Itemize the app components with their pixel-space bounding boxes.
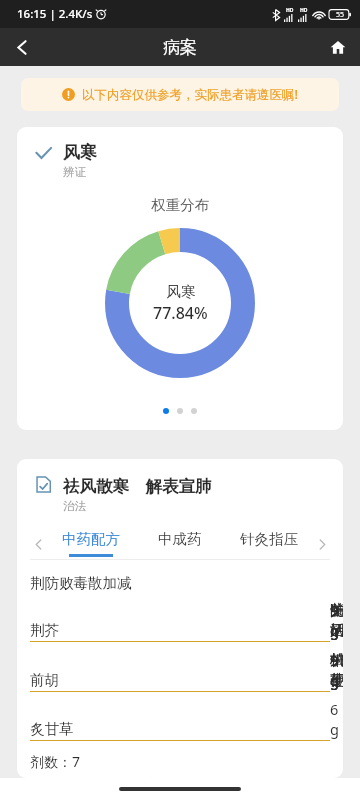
staticText: 风寒 [166,283,196,302]
button[interactable]: 中成药 [135,527,224,560]
staticText: HD [286,7,294,14]
button[interactable]: 风寒 [17,127,343,430]
button[interactable]: 以下内容仅供参考，实际患者请遵医嘱! [21,78,339,111]
staticText: 针灸指压 [240,530,298,548]
button[interactable]: 中药配方 [47,527,135,560]
staticText: 辨证 [63,165,86,179]
staticText: 炙甘草 [30,720,74,738]
button[interactable]: Previous [29,530,47,558]
staticText: 77.84% [153,302,208,324]
staticText: 55 [336,10,345,20]
button[interactable]: 针灸指压 [224,527,313,560]
staticText: 祛风散寒 解表宣肺 [63,474,212,497]
staticText: 16:15 | 2.4K/s [17,6,93,22]
staticText: 风寒 [63,142,97,163]
staticText: 荆防败毒散加减 [30,574,132,592]
staticText: 以下内容仅供参考，实际患者请遵医嘱! [82,86,298,103]
staticText: 病案 [163,37,197,58]
staticText: 剂数：7 [30,752,81,771]
button[interactable]: Next [313,530,331,558]
staticText: 权重分布 [151,196,209,214]
staticText: HD [300,7,308,14]
staticText: 荆芥 [30,621,59,639]
staticText: 中药配方 [62,530,120,548]
staticText: 前胡 [30,671,59,689]
button[interactable]: Back [0,28,44,66]
staticText: 中成药 [158,530,202,548]
staticText: 治法 [63,499,86,513]
button[interactable]: Home [316,28,360,66]
